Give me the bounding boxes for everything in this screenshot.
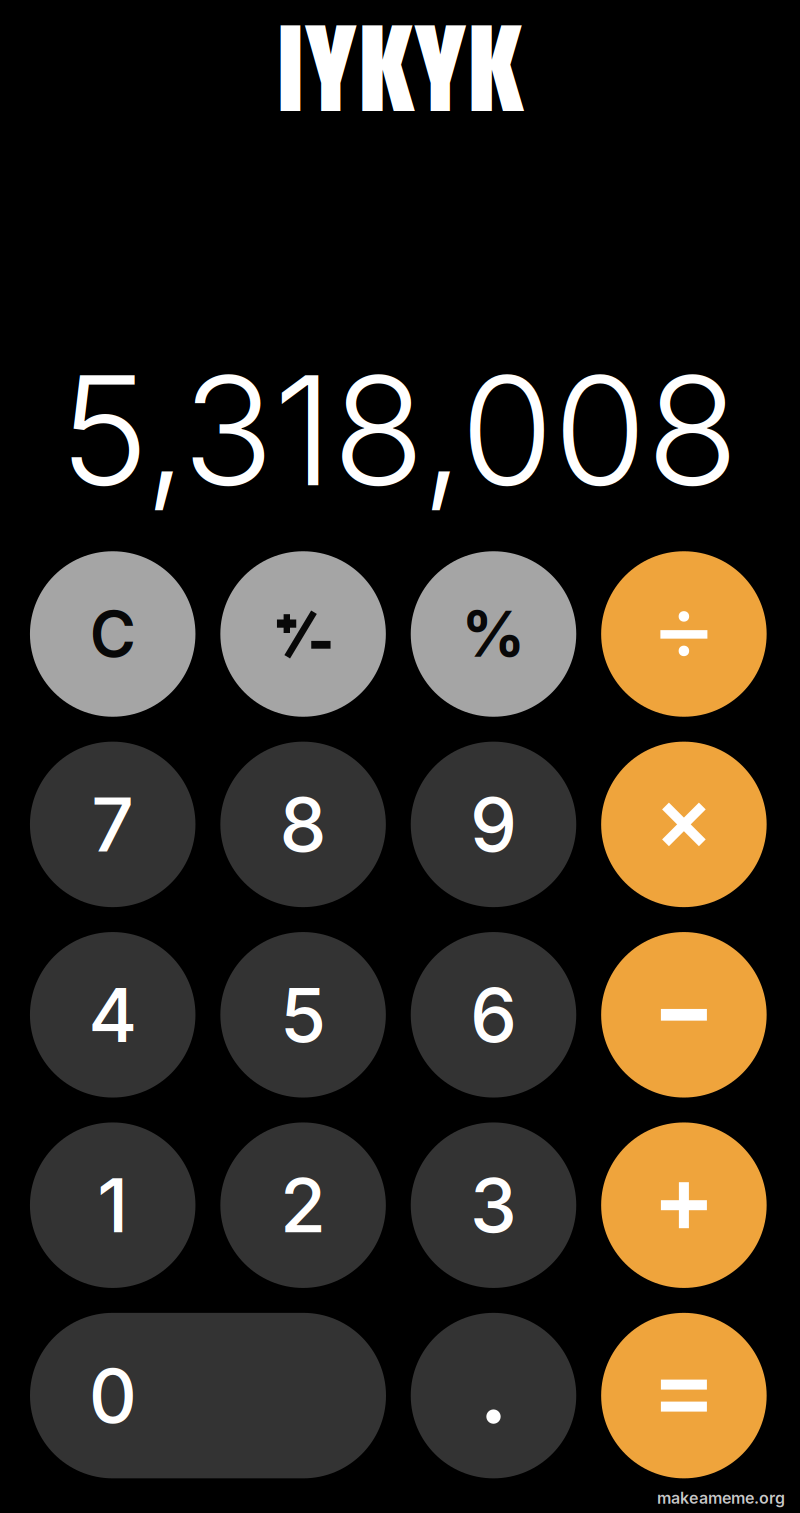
button[interactable]: Plus minus <box>220 551 386 717</box>
button[interactable]: Decimal point <box>411 1313 576 1478</box>
staticText: 8 <box>280 779 327 869</box>
button[interactable]: 5 <box>220 932 386 1097</box>
staticText: 6 <box>470 970 517 1060</box>
staticText: 4 <box>88 970 137 1060</box>
staticText: 9 <box>470 779 517 869</box>
button[interactable]: Minus <box>601 932 767 1097</box>
staticText: 7 <box>91 779 134 869</box>
button[interactable]: Zero <box>30 1313 386 1478</box>
staticText: 0 <box>89 1350 137 1441</box>
staticText: % <box>461 596 525 672</box>
staticText: makeameme.org <box>657 1488 785 1508</box>
button[interactable]: 1 <box>30 1122 195 1288</box>
staticText: IYKYK <box>296 0 503 144</box>
button[interactable]: Divide <box>601 551 767 717</box>
button[interactable]: Plus <box>601 1122 767 1288</box>
button[interactable]: 9 <box>411 742 576 907</box>
staticText: 5 <box>280 970 326 1060</box>
button[interactable]: 3 <box>411 1122 576 1288</box>
staticText: 1 <box>97 1160 128 1250</box>
button[interactable]: 7 <box>30 742 195 907</box>
button[interactable]: 4 <box>30 932 195 1097</box>
staticText: 3 <box>470 1160 517 1250</box>
staticText: 2 <box>280 1160 326 1250</box>
button[interactable]: Multiply <box>601 742 767 907</box>
button[interactable]: Clear <box>30 551 195 717</box>
staticText: C <box>90 596 136 672</box>
button[interactable]: 8 <box>220 742 386 907</box>
staticText: 5,318,008 <box>59 339 738 522</box>
button[interactable]: 2 <box>220 1122 386 1288</box>
button[interactable]: Equals <box>601 1313 767 1478</box>
button[interactable]: Percent <box>411 551 576 717</box>
button[interactable]: 6 <box>411 932 576 1097</box>
